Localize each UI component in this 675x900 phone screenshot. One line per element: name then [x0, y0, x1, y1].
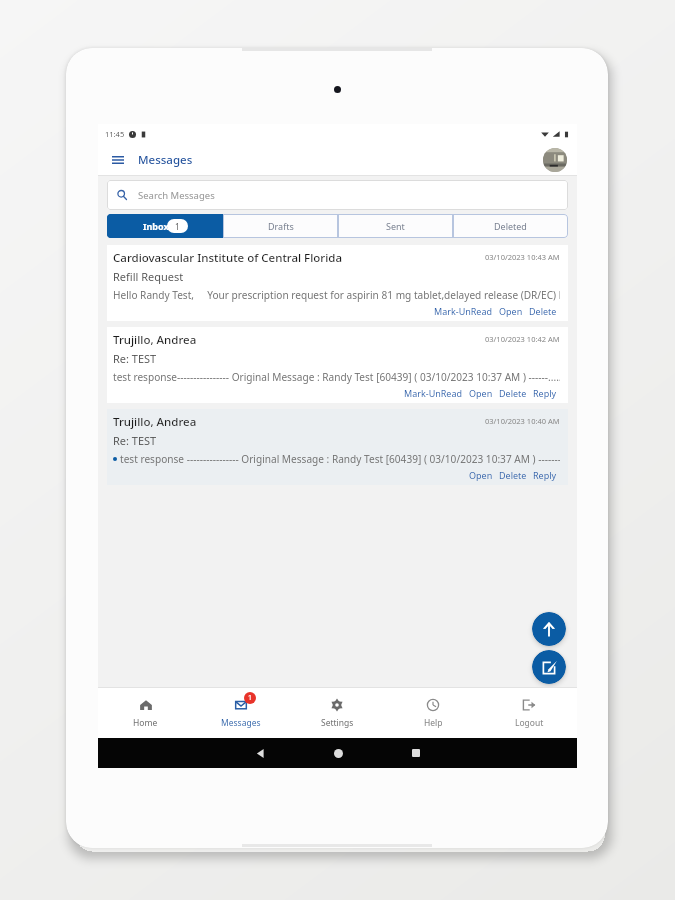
button[interactable]: 1 — [193, 688, 289, 738]
staticText: Inbox — [143, 220, 169, 232]
staticText: 03/10/2023 10:43 AM — [485, 252, 560, 262]
button[interactable]: Trujillo, Andrea — [107, 327, 568, 403]
staticText: Settings — [321, 717, 354, 729]
button[interactable]: Open — [496, 305, 526, 317]
staticText: Logout — [515, 717, 544, 729]
button[interactable]: Home — [98, 688, 193, 738]
button[interactable]: Mark-UnRead — [401, 387, 466, 399]
staticText: Reply — [533, 387, 557, 399]
staticText: Delete — [499, 469, 527, 481]
button[interactable]: Open — [466, 469, 496, 481]
staticText: test response---------------- Original M… — [113, 370, 560, 384]
button[interactable]: Profile — [543, 148, 567, 172]
button[interactable]: Reply — [530, 469, 560, 481]
staticText: Open — [499, 305, 523, 317]
staticText: Help — [424, 717, 443, 729]
staticText: Refill Request — [113, 269, 184, 284]
button[interactable]: Drafts — [223, 214, 338, 238]
button[interactable]: Inbox — [107, 214, 223, 238]
button[interactable]: Delete — [496, 387, 530, 399]
button[interactable]: Scroll to top — [532, 612, 566, 646]
staticText: Delete — [499, 387, 527, 399]
button[interactable]: Delete — [526, 305, 560, 317]
staticText: Search Messages — [138, 189, 215, 202]
staticText: Mark-UnRead — [404, 387, 463, 399]
button[interactable]: Search Messages — [107, 180, 568, 210]
button[interactable]: Menu — [108, 150, 128, 170]
staticText: Hello Randy Test, Your prescription requ… — [113, 288, 560, 302]
button[interactable]: Trujillo, Andrea — [107, 409, 568, 485]
button[interactable]: Deleted — [453, 214, 568, 238]
staticText: Re: TEST — [113, 433, 157, 448]
button[interactable]: Logout — [481, 688, 577, 738]
button[interactable]: Mark-UnRead — [431, 305, 496, 317]
staticText: Trujillo, Andrea — [113, 414, 197, 430]
button[interactable]: Reply — [530, 387, 560, 399]
staticText: Messages — [221, 717, 261, 729]
staticText: Open — [469, 387, 493, 399]
button[interactable]: Compose — [532, 650, 566, 684]
button[interactable]: Cardiovascular Institute of Central Flor… — [107, 245, 568, 321]
staticText: Drafts — [268, 220, 294, 232]
staticText: Cardiovascular Institute of Central Flor… — [113, 250, 342, 266]
button[interactable]: Back — [247, 740, 273, 766]
staticText: 03/10/2023 10:40 AM — [485, 416, 560, 426]
staticText: 1 — [175, 221, 180, 232]
button[interactable]: Delete — [496, 469, 530, 481]
button[interactable]: Settings — [289, 688, 385, 738]
staticText: Deleted — [494, 220, 527, 232]
staticText: Sent — [386, 220, 405, 232]
button[interactable]: Recents — [403, 740, 429, 766]
staticText: Open — [469, 469, 493, 481]
staticText: 03/10/2023 10:42 AM — [485, 334, 560, 344]
button[interactable]: Open — [466, 387, 496, 399]
button[interactable]: Help — [385, 688, 481, 738]
staticText: 1 — [248, 693, 253, 703]
staticText: Home — [133, 717, 158, 729]
staticText: 11:45 — [105, 129, 125, 139]
staticText: Delete — [529, 305, 557, 317]
button[interactable]: Home — [325, 740, 351, 766]
button[interactable]: Sent — [338, 214, 453, 238]
staticText: Mark-UnRead — [434, 305, 493, 317]
staticText: test response ---------------- Original … — [120, 452, 560, 466]
staticText: Messages — [138, 152, 193, 168]
staticText: Trujillo, Andrea — [113, 332, 197, 348]
staticText: Reply — [533, 469, 557, 481]
staticText: Re: TEST — [113, 351, 157, 366]
